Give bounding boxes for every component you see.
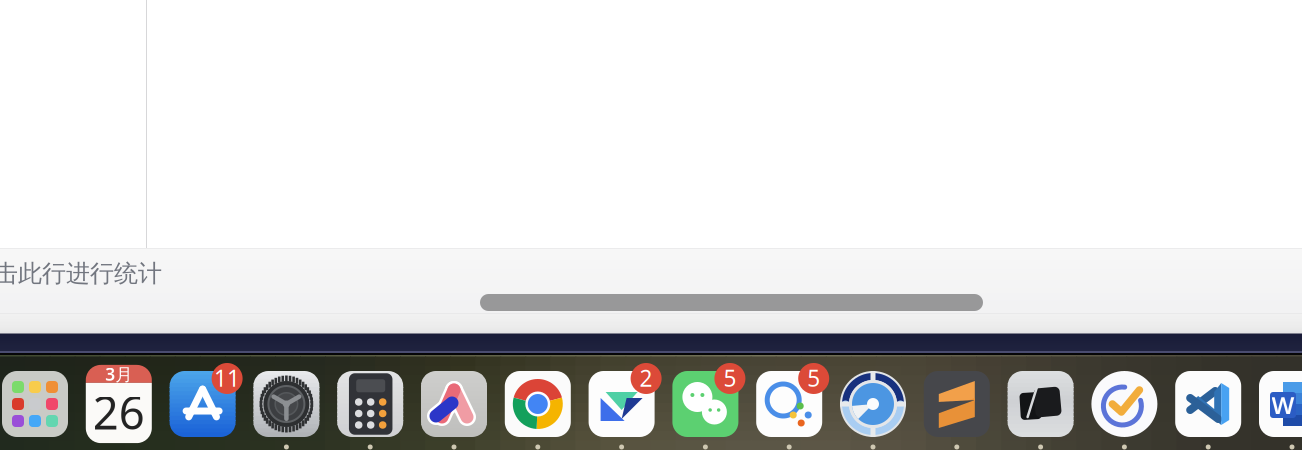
button[interactable]: DaisyDisk [840, 371, 906, 437]
staticText: 5 [807, 363, 820, 393]
button[interactable]: App Store [170, 371, 236, 437]
button[interactable]: 点击此行进行统计 [0, 0, 1302, 450]
button[interactable]: Visual Studio Code [1175, 371, 1241, 437]
staticText: 26 [93, 382, 145, 442]
button[interactable]: Calendar [86, 365, 152, 443]
button[interactable]: Arc [421, 371, 487, 437]
staticText: W [1271, 389, 1294, 421]
staticText: 11 [214, 363, 240, 393]
button[interactable]: LiquidText [1008, 371, 1074, 437]
button[interactable]: Microsoft Word [1259, 371, 1302, 437]
staticText: 2 [640, 363, 653, 393]
button[interactable]: Calculator [337, 371, 403, 437]
button[interactable]: Google Chrome [505, 371, 571, 437]
button[interactable]: WeCom [756, 371, 822, 437]
button[interactable]: System Settings [253, 371, 319, 437]
button[interactable]: Sublime Text [924, 371, 990, 437]
button[interactable]: WeChat [672, 371, 738, 437]
staticText: 5 [723, 363, 736, 393]
button[interactable]: TickTick [1091, 371, 1157, 437]
button[interactable]: Spark Mail [589, 371, 655, 437]
button[interactable]: Launchpad [2, 371, 68, 437]
staticText: 3月 [105, 362, 132, 385]
staticText: 点击此行进行统计 [0, 259, 162, 288]
